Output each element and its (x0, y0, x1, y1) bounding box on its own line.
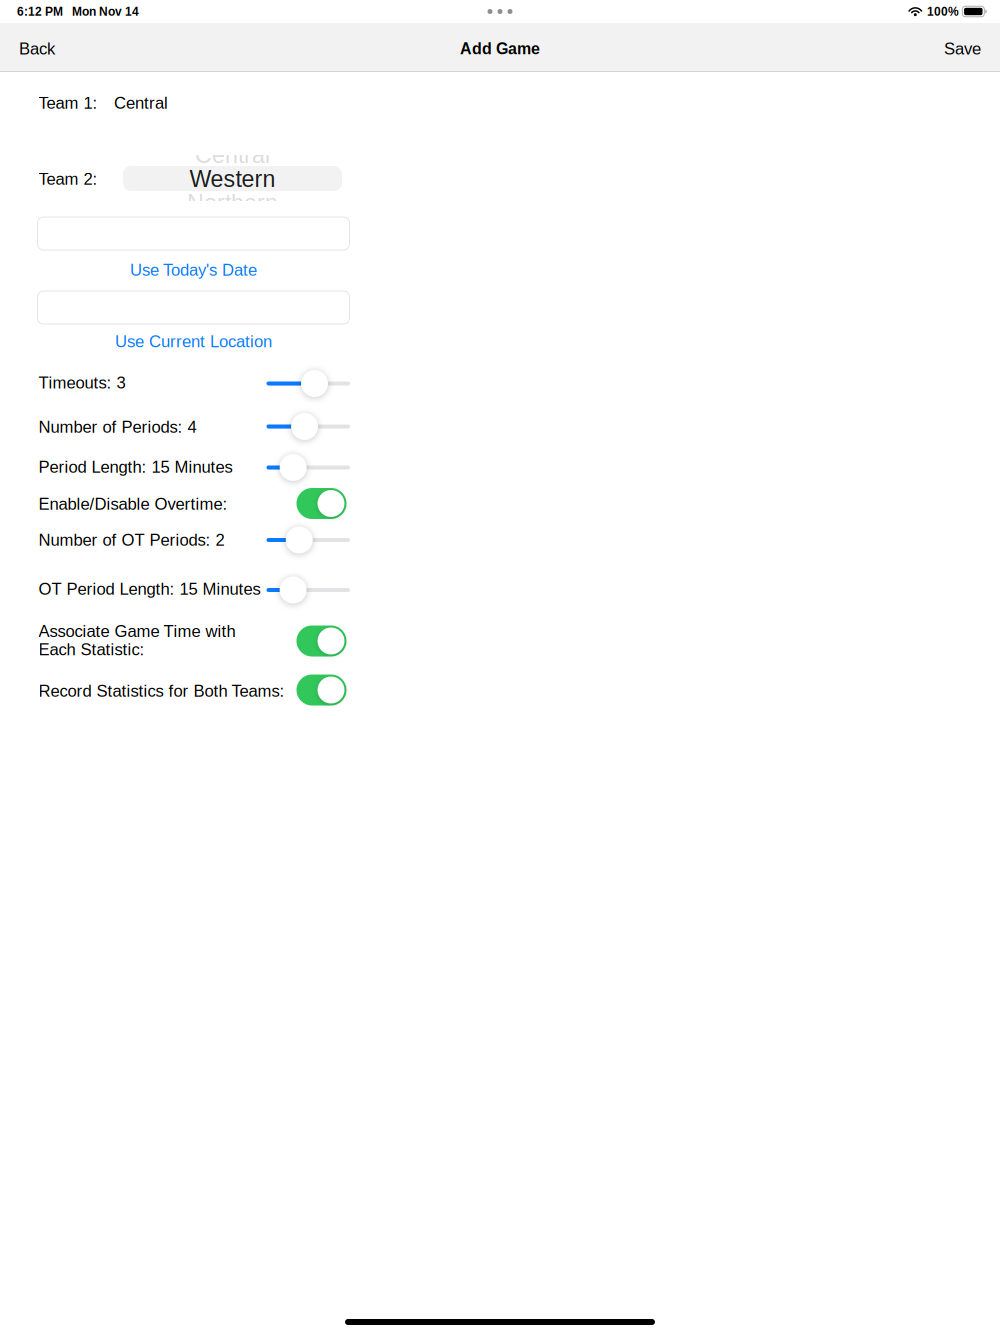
staticText: Timeouts: 3 (38, 373, 125, 392)
button[interactable]: Location (37, 291, 349, 324)
staticText: Associate Game Time with (38, 622, 235, 640)
staticText: Western (189, 166, 275, 192)
button[interactable]: OT period length (266, 574, 350, 605)
staticText: Use Today's Date (130, 261, 257, 279)
button[interactable]: Use Today's Date (37, 259, 349, 281)
staticText: Team 1: (38, 94, 97, 112)
button[interactable]: Enable or disable overtime (296, 488, 346, 519)
button[interactable]: Date (37, 217, 349, 250)
staticText: Team 2: (38, 170, 97, 188)
staticText: Central (114, 94, 168, 112)
button[interactable]: Use Current Location (37, 330, 349, 352)
staticText: OT Period Length: 15 Minutes (38, 580, 260, 598)
button[interactable]: Timeouts (266, 368, 350, 399)
button[interactable]: Period length (266, 452, 350, 483)
staticText: Northern (187, 190, 278, 216)
button[interactable]: Central (123, 155, 342, 201)
button[interactable]: Save (939, 24, 986, 71)
button[interactable]: Back (14, 24, 60, 71)
staticText: Back (19, 39, 55, 58)
staticText: Add Game (460, 40, 540, 58)
staticText: Save (944, 39, 981, 58)
button[interactable]: Record statistics for both teams (296, 674, 346, 705)
button[interactable]: Number of periods (266, 411, 350, 442)
staticText: Central (195, 142, 270, 168)
staticText: Number of OT Periods: 2 (38, 531, 224, 549)
staticText: Use Current Location (115, 332, 272, 351)
staticText: 6:12 PM (17, 5, 63, 18)
staticText: Enable/Disable Overtime: (38, 495, 227, 513)
button[interactable]: Number of OT periods (266, 524, 350, 555)
staticText: Each Statistic: (38, 640, 144, 659)
staticText: Record Statistics for Both Teams: (38, 682, 284, 700)
staticText: Period Length: 15 Minutes (38, 458, 232, 476)
staticText: 100% (927, 5, 959, 18)
button[interactable]: Associate game time with each statistic (296, 625, 346, 656)
staticText: Number of Periods: 4 (38, 418, 196, 436)
staticText: Mon Nov 14 (72, 5, 139, 18)
